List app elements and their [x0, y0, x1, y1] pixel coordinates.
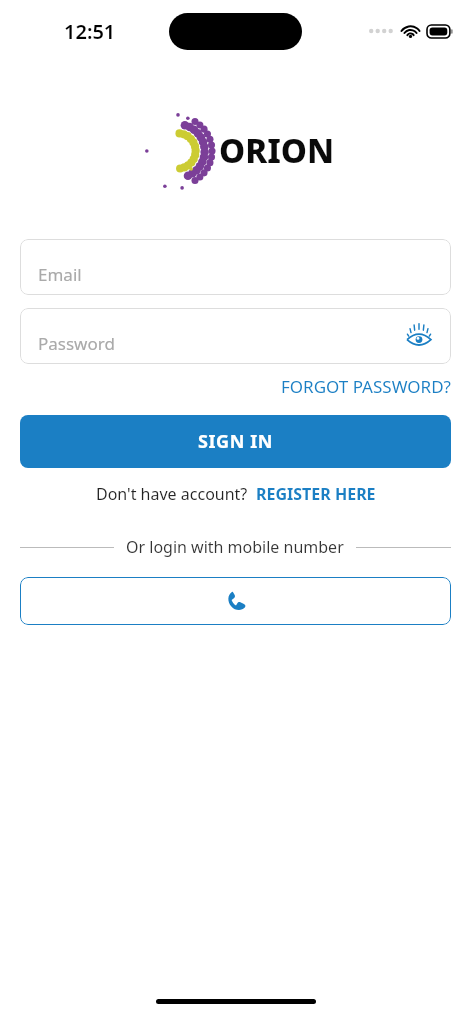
staticText: Don't have account? [96, 483, 248, 505]
staticText: Or login with mobile number [126, 536, 344, 558]
button[interactable]: FORGOT PASSWORD? [281, 375, 451, 398]
button[interactable]: SIGN IN [20, 415, 451, 468]
staticText: 12:51 [64, 18, 116, 45]
staticText: FORGOT PASSWORD? [281, 375, 451, 398]
staticText: SIGN IN [198, 429, 274, 454]
button[interactable]: Password [20, 308, 451, 364]
button[interactable]: Email [20, 239, 451, 295]
staticText: ORION [219, 128, 335, 173]
staticText: REGISTER HERE [256, 483, 376, 505]
button[interactable]: Show password [401, 318, 437, 354]
button[interactable]: Login with mobile number [20, 577, 451, 625]
staticText: Password [38, 332, 115, 355]
button[interactable]: REGISTER HERE [256, 483, 376, 505]
staticText: Email [38, 263, 82, 286]
